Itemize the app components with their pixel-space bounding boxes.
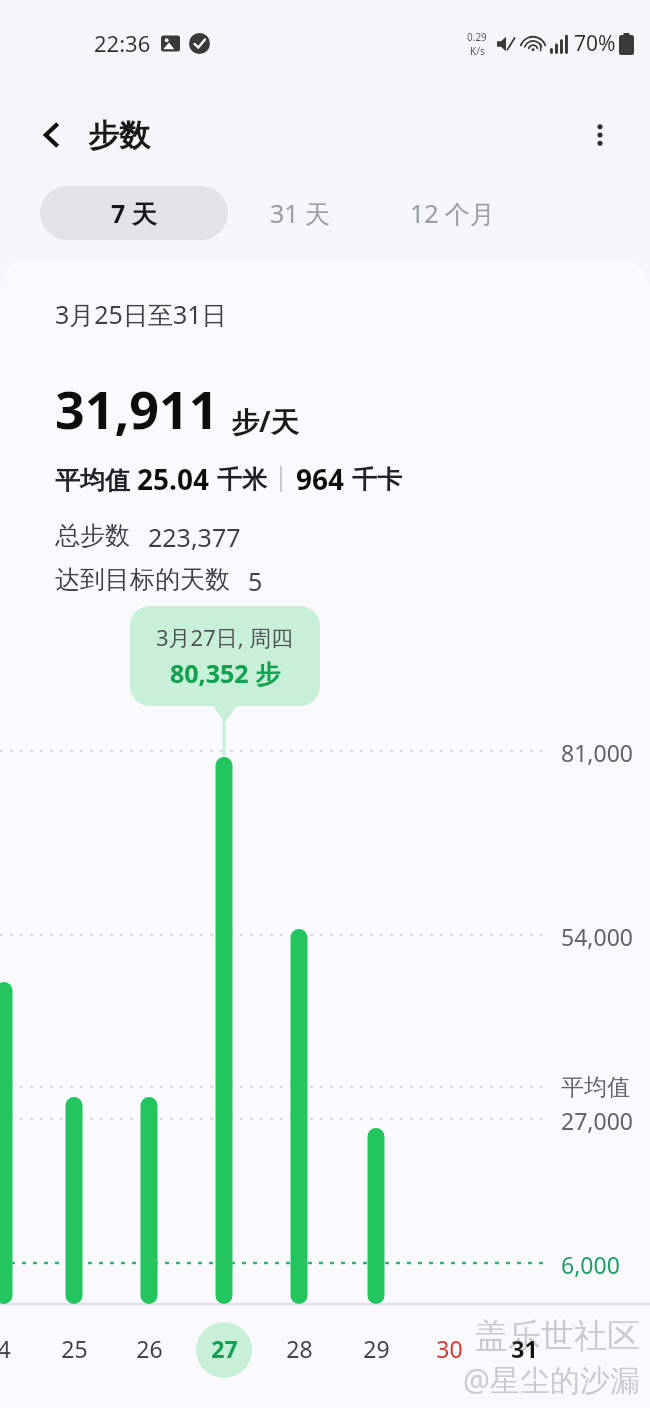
staticText: 达到目标的天数 bbox=[55, 564, 230, 595]
staticText: 25 bbox=[61, 1333, 88, 1364]
staticText: 31,911 bbox=[55, 373, 219, 444]
staticText: 4 bbox=[0, 1333, 11, 1364]
staticText: 25.04 bbox=[137, 460, 217, 498]
staticText: 29 bbox=[363, 1333, 390, 1364]
staticText: 80,352 步 bbox=[170, 656, 281, 690]
button[interactable]: 31 天 bbox=[228, 186, 373, 240]
staticText: 步/天 bbox=[231, 402, 299, 440]
staticText: 30 bbox=[436, 1333, 463, 1364]
staticText: 总步数 bbox=[55, 520, 130, 551]
staticText: 26 bbox=[136, 1333, 163, 1364]
staticText: 千米 bbox=[217, 464, 267, 495]
staticText: 平均值 bbox=[55, 462, 137, 496]
staticText: 12 个月 bbox=[410, 196, 496, 230]
staticText: 31 天 bbox=[270, 196, 331, 230]
button[interactable]: 7 天 bbox=[40, 186, 228, 240]
staticText: 22:36 bbox=[94, 28, 151, 58]
button[interactable]: 3月27日, 周四 bbox=[130, 606, 320, 706]
staticText: 步数 bbox=[88, 116, 150, 155]
staticText: 3月27日, 周四 bbox=[156, 622, 294, 652]
staticText: 31 bbox=[511, 1333, 538, 1364]
staticText: @星尘的沙漏 bbox=[463, 1359, 640, 1400]
staticText: 964 bbox=[296, 460, 352, 498]
staticText: 70% bbox=[574, 29, 616, 58]
staticText: 54,000 bbox=[561, 921, 633, 952]
button[interactable]: More options bbox=[574, 109, 626, 161]
staticText: 81,000 bbox=[561, 737, 633, 768]
staticText: 6,000 bbox=[561, 1249, 620, 1280]
button[interactable]: 12 个月 bbox=[373, 186, 533, 240]
staticText: K/s bbox=[470, 44, 485, 58]
staticText: 27,000 bbox=[561, 1105, 633, 1136]
staticText: 7 天 bbox=[111, 196, 157, 230]
button[interactable]: Back bbox=[26, 109, 78, 161]
staticText: 平均值 bbox=[561, 1073, 630, 1102]
staticText: 千卡 bbox=[352, 464, 402, 495]
staticText: 0.29 bbox=[467, 30, 487, 44]
staticText: 5 bbox=[248, 564, 263, 598]
staticText: 盖乐世社区 bbox=[475, 1315, 640, 1357]
staticText: 223,377 bbox=[148, 520, 241, 554]
staticText: 28 bbox=[286, 1333, 313, 1364]
staticText: 27 bbox=[211, 1333, 238, 1364]
staticText: 3月25日至31日 bbox=[55, 297, 227, 331]
